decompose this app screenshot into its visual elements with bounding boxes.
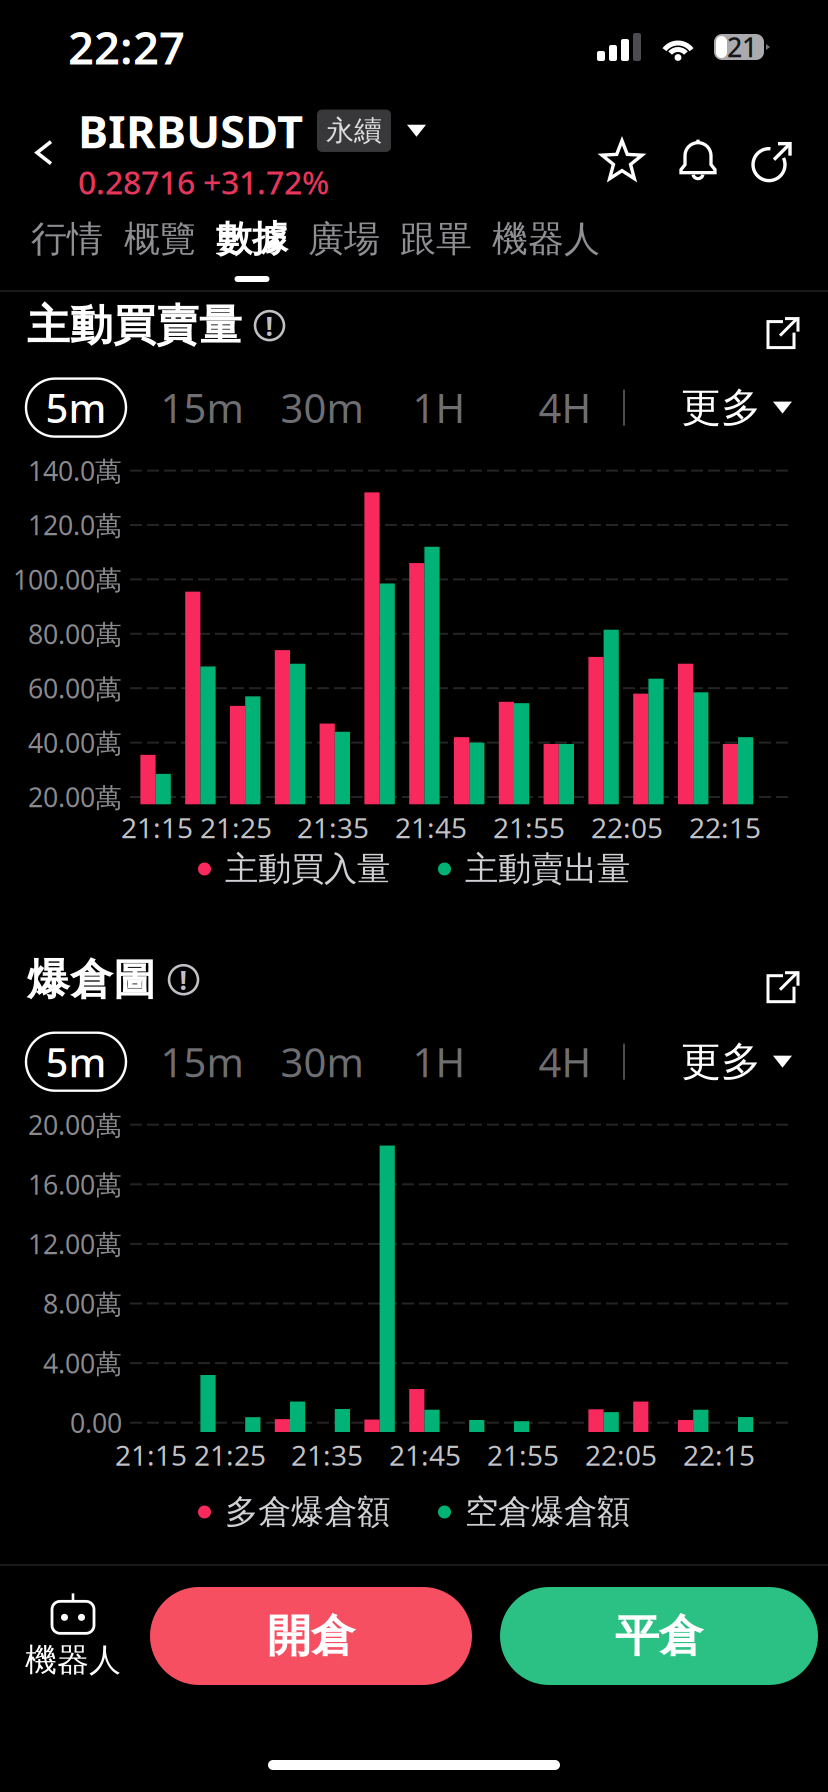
staticText: 更多 <box>681 383 761 432</box>
button[interactable]: 1H <box>408 379 470 437</box>
staticText: BIRBUSDT <box>78 101 303 161</box>
staticText: 16.00萬 <box>28 1167 122 1202</box>
staticText: 120.0萬 <box>28 507 122 543</box>
staticText: 140.0萬 <box>28 453 122 488</box>
button[interactable]: 平倉 <box>500 1587 818 1685</box>
staticText: 100.00萬 <box>13 562 122 597</box>
staticText: 主動買入量 <box>225 848 390 889</box>
staticText: 21 <box>727 29 757 65</box>
button[interactable]: Expand <box>750 302 814 366</box>
staticText: 8.00萬 <box>43 1286 122 1321</box>
staticText: 平倉 <box>615 1609 703 1663</box>
staticText: 22:05 <box>591 809 663 846</box>
staticText: 15m <box>160 381 243 434</box>
button[interactable]: 4H <box>534 1033 596 1091</box>
button[interactable]: 數據 <box>207 214 297 288</box>
button[interactable]: 廣場 <box>299 214 389 288</box>
staticText: 21:35 <box>291 1436 363 1474</box>
staticText: 21:35 <box>297 809 369 846</box>
button[interactable]: 15m <box>158 379 246 437</box>
staticText: 5m <box>45 381 106 434</box>
button[interactable]: 5m <box>26 1033 126 1091</box>
button[interactable]: 更多 <box>681 379 792 437</box>
staticText: 行情 <box>31 217 103 261</box>
button[interactable]: 行情 <box>22 214 112 288</box>
staticText: 更多 <box>681 1037 761 1086</box>
staticText: 21:25 <box>194 1436 266 1474</box>
button[interactable]: Share <box>736 139 806 183</box>
staticText: 20.00萬 <box>28 779 122 815</box>
staticText: 21:55 <box>493 809 565 846</box>
staticText: 30m <box>280 381 363 434</box>
button[interactable]: 15m <box>158 1033 246 1091</box>
staticText: 數據 <box>216 217 288 261</box>
staticText: 80.00萬 <box>28 616 122 651</box>
button[interactable]: 1H <box>408 1033 470 1091</box>
button[interactable]: Alerts <box>660 139 736 183</box>
staticText: 0.28716 +31.72% <box>78 161 329 203</box>
staticText: 概覽 <box>124 217 196 261</box>
staticText: ! <box>265 308 273 343</box>
staticText: 機器人 <box>25 1640 121 1680</box>
staticText: 永續 <box>326 114 382 148</box>
staticText: 22:05 <box>585 1436 657 1474</box>
staticText: 爆倉圖 <box>27 953 156 1006</box>
button[interactable]: 機器人 <box>18 1592 128 1680</box>
staticText: 15m <box>160 1035 243 1088</box>
staticText: 22:27 <box>68 17 185 77</box>
button[interactable]: Expand <box>750 956 814 1020</box>
button[interactable]: 5m <box>26 379 126 437</box>
button[interactable]: 概覽 <box>115 214 205 288</box>
staticText: 12.00萬 <box>28 1226 122 1262</box>
staticText: 22:15 <box>683 1436 755 1474</box>
staticText: 空倉爆倉額 <box>465 1491 630 1532</box>
staticText: 22:15 <box>689 809 761 846</box>
staticText: 21:15 <box>115 1436 187 1474</box>
staticText: 1H <box>412 381 465 434</box>
staticText: 60.00萬 <box>28 670 122 706</box>
button[interactable]: 4H <box>534 379 596 437</box>
staticText: 0.00 <box>70 1405 122 1440</box>
button[interactable]: Back <box>0 95 78 183</box>
button[interactable]: 30m <box>278 1033 366 1091</box>
button[interactable]: 機器人 <box>483 214 609 288</box>
staticText: 21:45 <box>389 1436 461 1474</box>
staticText: 5m <box>45 1035 106 1088</box>
button[interactable]: 開倉 <box>150 1587 472 1685</box>
button[interactable]: Favorite <box>584 139 660 183</box>
button[interactable]: 30m <box>278 379 366 437</box>
staticText: 主動賣出量 <box>465 848 630 889</box>
staticText: 4.00萬 <box>43 1345 122 1381</box>
staticText: 4H <box>538 1035 591 1088</box>
staticText: 跟單 <box>400 217 472 261</box>
staticText: 21:55 <box>487 1436 559 1474</box>
staticText: 多倉爆倉額 <box>225 1491 390 1532</box>
staticText: 21:45 <box>395 809 467 846</box>
staticText: 開倉 <box>267 1609 355 1663</box>
staticText: 機器人 <box>492 217 600 261</box>
staticText: 1H <box>412 1035 465 1088</box>
staticText: 4H <box>538 381 591 434</box>
staticText: 20.00萬 <box>28 1107 122 1142</box>
staticText: ! <box>179 962 187 997</box>
button[interactable]: 更多 <box>681 1033 792 1091</box>
staticText: 40.00萬 <box>28 725 122 760</box>
staticText: 主動買賣量 <box>27 299 242 352</box>
button[interactable]: 跟單 <box>391 214 481 288</box>
staticText: 30m <box>280 1035 363 1088</box>
staticText: 廣場 <box>308 217 380 261</box>
staticText: 21:25 <box>200 809 272 846</box>
staticText: 21:15 <box>121 809 193 846</box>
